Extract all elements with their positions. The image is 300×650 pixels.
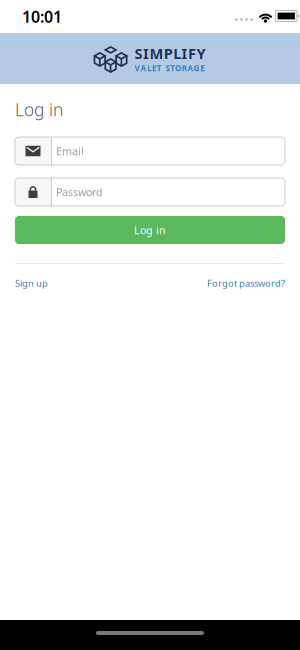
button[interactable]: Log in: [15, 216, 285, 244]
staticText: Log in: [134, 223, 166, 237]
staticText: Forgot password?: [207, 277, 285, 289]
button[interactable]: Email: [15, 137, 285, 165]
staticText: Password: [56, 185, 103, 199]
staticText: VALET STORAGE: [135, 63, 204, 73]
button[interactable]: Password: [15, 178, 285, 206]
staticText: SIMPLIFY: [135, 43, 205, 63]
staticText: Sign up: [15, 277, 48, 289]
button[interactable]: Sign up: [15, 277, 48, 289]
staticText: 10:01: [22, 6, 62, 27]
staticText: Email: [56, 144, 84, 158]
button[interactable]: Forgot password?: [207, 277, 285, 289]
staticText: Log in: [15, 98, 63, 121]
